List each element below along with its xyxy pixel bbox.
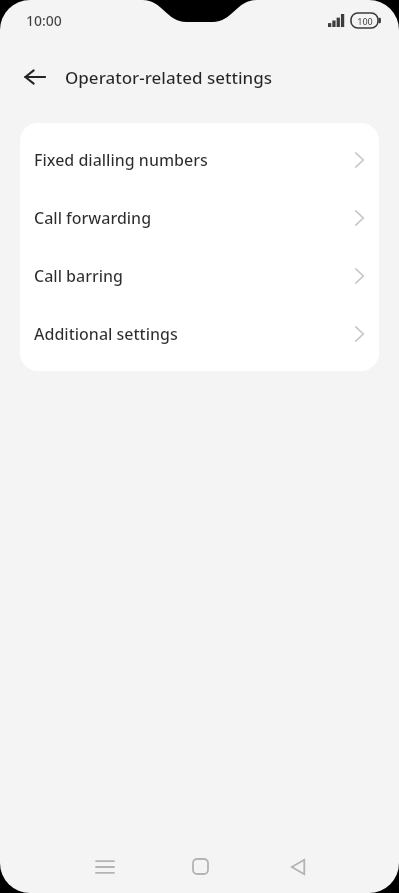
button[interactable]: Back: [259, 840, 337, 893]
button[interactable]: Call forwarding: [20, 189, 379, 247]
staticText: Fixed dialling numbers: [34, 149, 208, 171]
button[interactable]: Additional settings: [20, 305, 379, 363]
staticText: Additional settings: [34, 323, 178, 345]
button[interactable]: Recent apps: [66, 840, 144, 893]
button[interactable]: Call barring: [20, 247, 379, 305]
staticText: 100: [357, 15, 373, 27]
staticText: Operator-related settings: [65, 66, 272, 89]
staticText: Call barring: [34, 265, 123, 287]
button[interactable]: Home: [161, 840, 239, 893]
button[interactable]: Back: [14, 56, 56, 98]
staticText: 10:00: [26, 11, 62, 30]
staticText: Call forwarding: [34, 207, 152, 229]
button[interactable]: Fixed dialling numbers: [20, 131, 379, 189]
